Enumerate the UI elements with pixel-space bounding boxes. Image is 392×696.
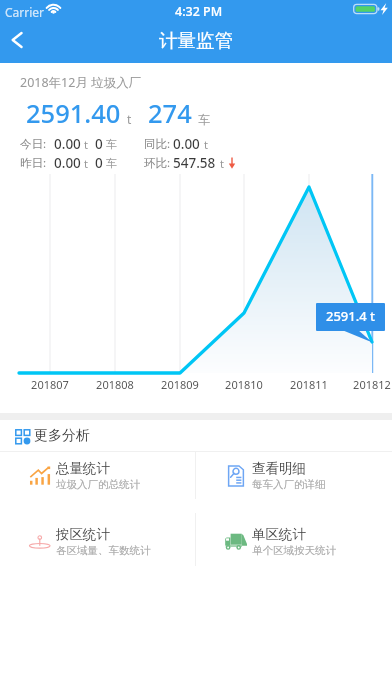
- button[interactable]: 总量统计: [0, 452, 195, 499]
- staticText: 4:32 PM: [175, 3, 223, 20]
- staticText: 按区统计: [56, 526, 110, 543]
- staticText: Carrier: [5, 4, 45, 20]
- staticText: 查看明细: [252, 460, 306, 477]
- staticText: t: [84, 156, 88, 171]
- staticText: t: [127, 111, 132, 127]
- staticText: 各区域量、车数统计: [56, 544, 151, 557]
- staticText: 0: [95, 135, 103, 153]
- staticText: 环比:: [144, 155, 171, 171]
- staticText: t: [84, 137, 88, 152]
- staticText: 今日:: [20, 136, 47, 152]
- staticText: 单区统计: [252, 526, 306, 543]
- staticText: 0.00: [173, 135, 200, 153]
- staticText: 2018年12月 垃圾入厂: [20, 74, 142, 91]
- staticText: 2591.4 t: [326, 307, 376, 325]
- staticText: 车: [106, 156, 117, 170]
- staticText: 201808: [80, 377, 150, 392]
- staticText: 每车入厂的详细: [252, 478, 326, 491]
- button[interactable]: 查看明细: [196, 452, 392, 499]
- staticText: 垃圾入厂的总统计: [56, 478, 140, 491]
- staticText: 更多分析: [34, 427, 90, 445]
- staticText: 201812: [337, 377, 392, 392]
- staticText: 201809: [145, 377, 215, 392]
- button[interactable]: Back: [0, 20, 40, 63]
- staticText: 车: [106, 137, 117, 151]
- staticText: 同比:: [144, 136, 171, 152]
- staticText: t: [204, 137, 208, 152]
- staticText: 201807: [15, 377, 85, 392]
- button[interactable]: 按区统计: [0, 515, 195, 568]
- staticText: 车: [198, 112, 210, 127]
- staticText: 201811: [274, 377, 344, 392]
- staticText: 2591.40: [26, 96, 121, 131]
- staticText: 总量统计: [56, 460, 110, 477]
- staticText: 计量监管: [159, 29, 233, 52]
- staticText: 274: [148, 96, 192, 131]
- staticText: 547.58: [173, 154, 216, 172]
- staticText: 单个区域按天统计: [252, 544, 336, 557]
- staticText: 0: [95, 154, 103, 172]
- button[interactable]: 单区统计: [196, 515, 392, 568]
- staticText: 昨日:: [20, 155, 47, 171]
- staticText: 0.00: [54, 135, 81, 153]
- staticText: 201810: [209, 377, 279, 392]
- staticText: t: [220, 156, 224, 171]
- staticText: 0.00: [54, 154, 81, 172]
